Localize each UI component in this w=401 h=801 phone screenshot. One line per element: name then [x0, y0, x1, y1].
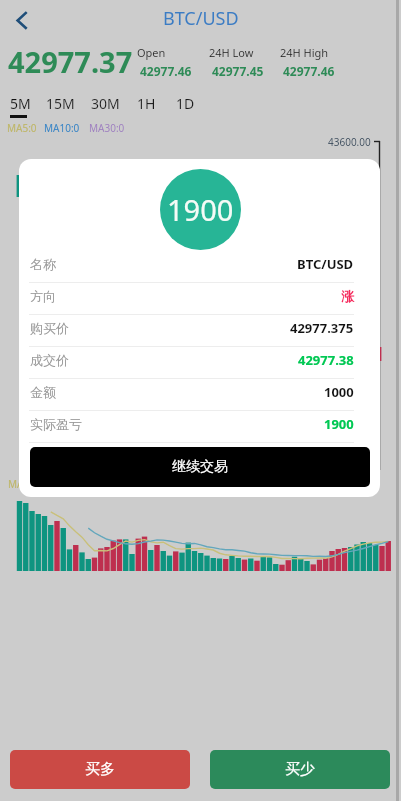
staticText: MA30:0	[89, 121, 125, 135]
staticText: 42977.46	[283, 63, 335, 79]
button[interactable]: 买少	[210, 750, 390, 789]
button[interactable]: 买多	[10, 750, 190, 789]
staticText: 24H High	[280, 45, 329, 60]
staticText: 方向	[30, 288, 56, 304]
staticText: 1D	[176, 94, 195, 113]
staticText: 金额	[30, 384, 56, 400]
staticText: 1000	[324, 383, 354, 401]
staticText: 43600.00	[328, 135, 371, 149]
staticText: 15M	[46, 94, 75, 113]
button[interactable]: 30M	[91, 94, 120, 113]
button[interactable]: 继续交易	[30, 447, 370, 487]
staticText: 涨	[341, 288, 354, 304]
staticText: BTC/USD	[163, 6, 239, 31]
staticText: 42977.375	[290, 319, 354, 337]
staticText: MA5:0	[8, 477, 38, 491]
staticText: 42977.46	[140, 63, 192, 79]
button[interactable]: 1D	[176, 94, 195, 113]
staticText: 30M	[91, 94, 120, 113]
staticText: 42977.37	[8, 42, 133, 81]
staticText: MA5:0	[7, 121, 37, 135]
staticText: 继续交易	[172, 458, 228, 476]
staticText: MA10:0	[44, 121, 80, 135]
staticText: 实际盈亏	[30, 416, 82, 432]
staticText: Open	[137, 45, 166, 60]
staticText: 购买价	[30, 320, 69, 336]
staticText: 买多	[85, 760, 115, 779]
staticText: BTC/USD	[297, 255, 354, 273]
staticText: 24H Low	[209, 45, 254, 60]
staticText: 1900	[167, 190, 234, 229]
staticText: 成交价	[30, 352, 69, 368]
button[interactable]: Back	[2, 2, 38, 38]
button[interactable]: 1H	[137, 94, 156, 113]
button[interactable]: 15M	[46, 94, 75, 113]
staticText: 1900	[324, 415, 354, 433]
staticText: 42977.45	[212, 63, 264, 79]
staticText: 1H	[137, 94, 156, 113]
staticText: 42977.38	[298, 351, 354, 369]
staticText: 买少	[285, 760, 315, 779]
button[interactable]: 5M	[10, 94, 31, 118]
staticText: 名称	[30, 256, 56, 272]
staticText: 5M	[10, 94, 31, 113]
